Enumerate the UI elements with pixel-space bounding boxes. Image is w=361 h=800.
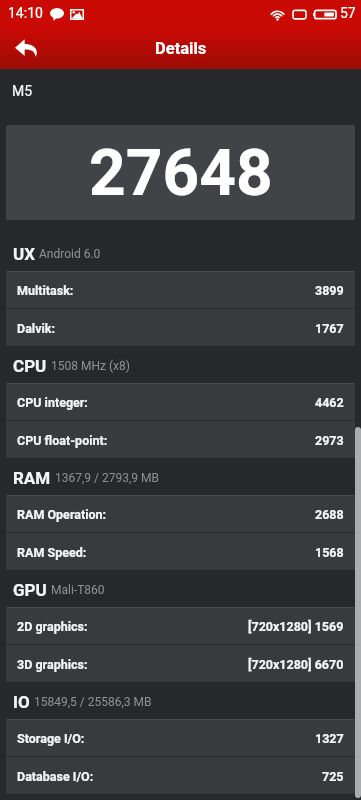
- staticText: Mali-T860: [51, 583, 105, 597]
- staticText: 57: [340, 5, 356, 21]
- staticText: Dalvik:: [17, 321, 55, 336]
- staticText: 27648: [89, 136, 273, 211]
- staticText: Android 6.0: [39, 247, 101, 261]
- staticText: 1327: [315, 731, 344, 746]
- staticText: CPU integer:: [17, 395, 88, 410]
- staticText: UX: [13, 244, 35, 264]
- button[interactable]: Multitask:: [6, 271, 355, 308]
- staticText: RAM Speed:: [17, 545, 87, 560]
- button[interactable]: Back: [8, 31, 44, 67]
- staticText: RAM Operation:: [17, 507, 107, 522]
- staticText: 4462: [315, 395, 344, 410]
- staticText: 1767: [315, 321, 344, 336]
- button[interactable]: 2D graphics:: [6, 607, 355, 644]
- staticText: 2D graphics:: [17, 619, 88, 634]
- button[interactable]: RAM Speed:: [6, 533, 355, 570]
- staticText: 725: [322, 769, 344, 784]
- staticText: GPU: [13, 580, 47, 600]
- staticText: RAM: [13, 468, 51, 488]
- staticText: 15849,5 / 25586,3 MB: [34, 695, 152, 709]
- staticText: 14:10: [8, 5, 43, 21]
- staticText: 2688: [315, 507, 344, 522]
- staticText: Storage I/O:: [17, 731, 85, 746]
- staticText: IO: [13, 692, 30, 712]
- staticText: M5: [12, 83, 33, 99]
- staticText: 3D graphics:: [17, 657, 88, 672]
- staticText: 1367,9 / 2793,9 MB: [55, 471, 159, 485]
- button[interactable]: RAM Operation:: [6, 495, 355, 532]
- staticText: 1568: [315, 545, 344, 560]
- staticText: [720x1280] 6670: [248, 657, 344, 672]
- staticText: Multitask:: [17, 283, 74, 298]
- button[interactable]: 3D graphics:: [6, 645, 355, 682]
- button[interactable]: CPU integer:: [6, 383, 355, 420]
- staticText: Database I/O:: [17, 769, 94, 784]
- staticText: CPU float-point:: [17, 433, 108, 448]
- staticText: 3899: [315, 283, 344, 298]
- button[interactable]: Dalvik:: [6, 309, 355, 346]
- button[interactable]: CPU float-point:: [6, 421, 355, 458]
- staticText: 2973: [315, 433, 344, 448]
- staticText: [720x1280] 1569: [248, 619, 344, 634]
- staticText: CPU: [13, 356, 47, 376]
- button[interactable]: Database I/O:: [6, 757, 355, 794]
- staticText: Details: [155, 39, 207, 58]
- staticText: 1508 MHz (x8): [51, 359, 130, 373]
- button[interactable]: Storage I/O:: [6, 719, 355, 756]
